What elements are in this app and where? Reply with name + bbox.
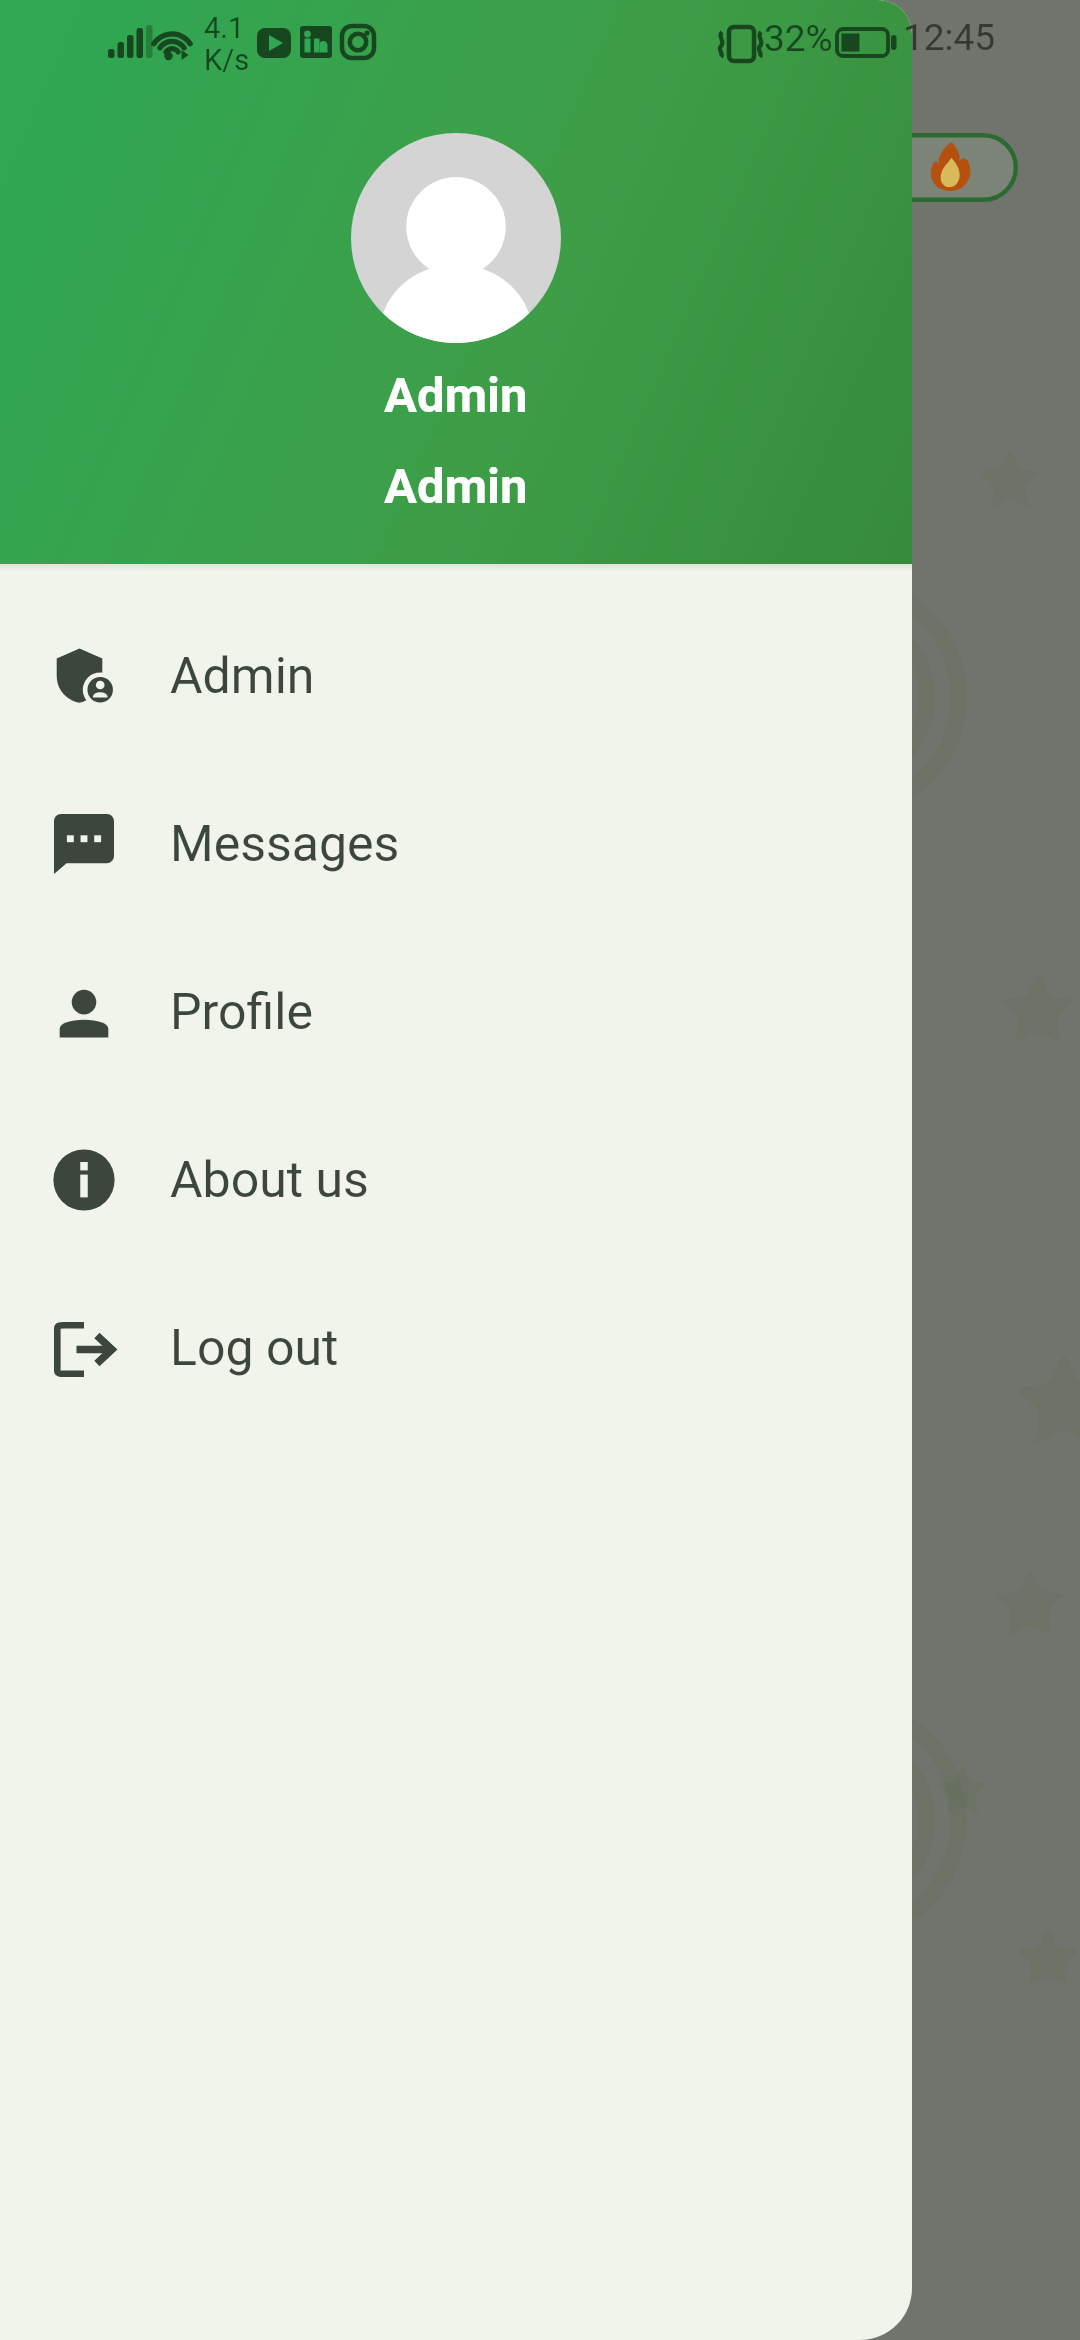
staticText: Admin	[170, 647, 315, 706]
button[interactable]: Log out	[0, 1264, 912, 1432]
staticText: 12:45	[903, 16, 996, 59]
button[interactable]: Messages	[0, 760, 912, 928]
staticText: Messages	[170, 815, 400, 874]
staticText: Admin	[384, 367, 528, 424]
staticText: Profile	[170, 983, 313, 1042]
staticText: 32%	[764, 17, 833, 60]
staticText: Admin	[384, 458, 528, 515]
button[interactable]: Profile	[0, 928, 912, 1096]
button[interactable]: About us	[0, 1096, 912, 1264]
staticText: 4.1 K/s	[204, 11, 250, 77]
button[interactable]: Admin	[0, 592, 912, 760]
button[interactable]: Profile picture	[351, 133, 561, 343]
staticText: Log out	[170, 1319, 339, 1378]
button[interactable]: Close navigation drawer	[0, 0, 1080, 2340]
staticText: About us	[170, 1151, 369, 1210]
